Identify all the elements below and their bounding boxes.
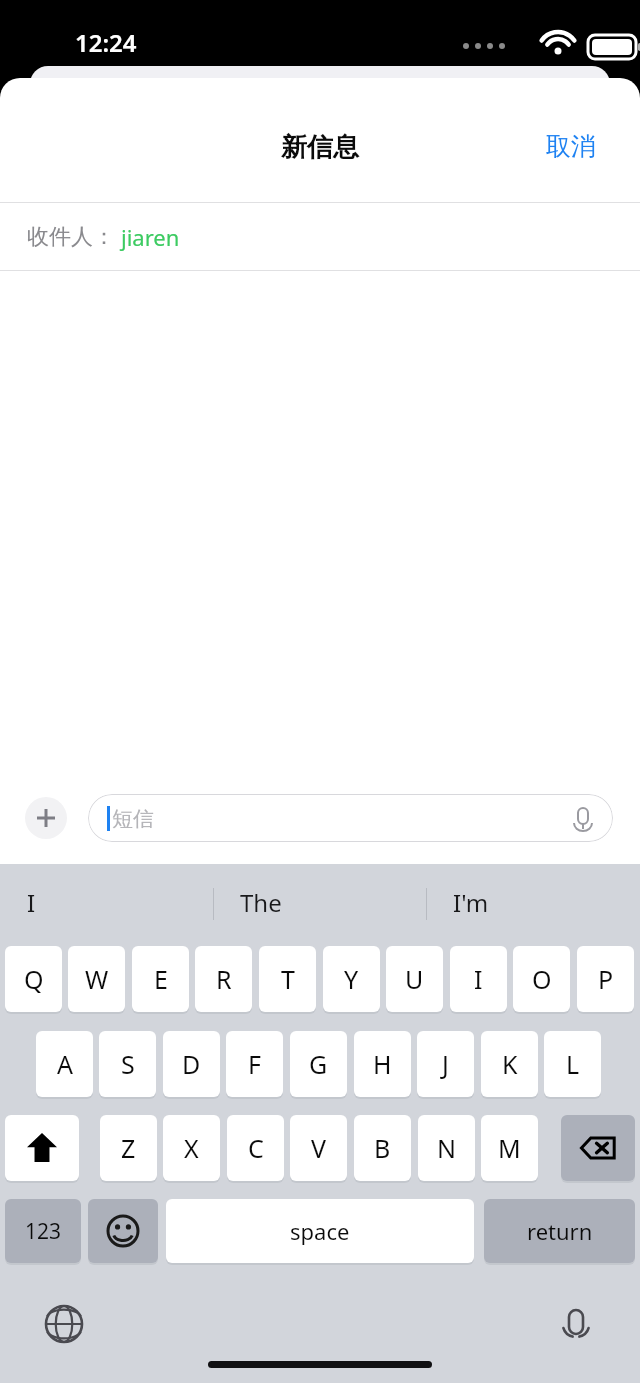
- button[interactable]: return: [484, 1199, 635, 1263]
- button[interactable]: B: [354, 1115, 411, 1181]
- button[interactable]: T: [259, 946, 316, 1012]
- button[interactable]: space: [166, 1199, 474, 1263]
- button[interactable]: 取消: [540, 126, 602, 167]
- staticText: return: [527, 1216, 593, 1246]
- button[interactable]: C: [227, 1115, 284, 1181]
- button[interactable]: P: [577, 946, 634, 1012]
- button[interactable]: F: [226, 1031, 283, 1097]
- button[interactable]: J: [417, 1031, 474, 1097]
- button[interactable]: Add attachment: [25, 797, 67, 839]
- button[interactable]: I: [450, 946, 507, 1012]
- button[interactable]: V: [290, 1115, 347, 1181]
- staticText: K: [502, 1047, 518, 1081]
- button[interactable]: M: [481, 1115, 538, 1181]
- button[interactable]: 收件人：: [0, 203, 640, 270]
- button[interactable]: Change keyboard: [40, 1300, 88, 1348]
- staticText: E: [154, 962, 168, 996]
- button[interactable]: N: [418, 1115, 475, 1181]
- staticText: The: [240, 886, 400, 919]
- staticText: T: [281, 962, 295, 996]
- staticText: P: [598, 962, 614, 996]
- staticText: S: [121, 1047, 135, 1081]
- staticText: I'm: [453, 886, 613, 919]
- staticText: X: [184, 1131, 199, 1165]
- staticText: F: [248, 1047, 261, 1081]
- staticText: 短信: [112, 806, 154, 832]
- staticText: B: [374, 1131, 391, 1165]
- button[interactable]: L: [544, 1031, 601, 1097]
- staticText: G: [309, 1047, 328, 1081]
- button[interactable]: O: [513, 946, 570, 1012]
- button[interactable]: S: [99, 1031, 156, 1097]
- staticText: V: [311, 1131, 327, 1165]
- staticText: N: [437, 1131, 457, 1165]
- button[interactable]: I: [27, 872, 187, 932]
- button[interactable]: Y: [323, 946, 380, 1012]
- staticText: R: [216, 962, 232, 996]
- button[interactable]: Emoji: [88, 1199, 158, 1263]
- button[interactable]: R: [195, 946, 252, 1012]
- staticText: I: [474, 962, 483, 996]
- staticText: space: [290, 1216, 350, 1246]
- button[interactable]: A: [36, 1031, 93, 1097]
- button[interactable]: Voice message: [568, 803, 598, 833]
- staticText: H: [373, 1047, 392, 1081]
- staticText: 12:24: [75, 26, 137, 59]
- button[interactable]: H: [354, 1031, 411, 1097]
- staticText: D: [182, 1047, 201, 1081]
- staticText: I: [27, 886, 187, 919]
- staticText: Q: [24, 962, 44, 996]
- staticText: M: [498, 1131, 521, 1165]
- button[interactable]: 短信: [88, 794, 613, 842]
- button[interactable]: Dictation: [552, 1300, 600, 1348]
- staticText: O: [532, 962, 552, 996]
- button[interactable]: Z: [100, 1115, 157, 1181]
- staticText: 新信息: [281, 131, 359, 164]
- button[interactable]: 123: [5, 1199, 81, 1263]
- button[interactable]: W: [68, 946, 125, 1012]
- button[interactable]: Q: [5, 946, 62, 1012]
- staticText: Y: [344, 962, 359, 996]
- staticText: U: [405, 962, 424, 996]
- button[interactable]: X: [163, 1115, 220, 1181]
- staticText: 123: [25, 1217, 62, 1246]
- staticText: jiaren: [121, 222, 180, 252]
- staticText: 收件人：: [27, 223, 115, 251]
- button[interactable]: Delete: [561, 1115, 635, 1181]
- staticText: Z: [121, 1131, 136, 1165]
- staticText: A: [57, 1047, 73, 1081]
- staticText: W: [85, 962, 109, 996]
- staticText: J: [442, 1047, 449, 1081]
- button[interactable]: U: [386, 946, 443, 1012]
- button[interactable]: K: [481, 1031, 538, 1097]
- staticText: L: [566, 1047, 580, 1081]
- staticText: C: [248, 1131, 264, 1165]
- staticText: 取消: [546, 131, 596, 162]
- button[interactable]: I'm: [453, 872, 613, 932]
- button[interactable]: E: [132, 946, 189, 1012]
- button[interactable]: D: [163, 1031, 220, 1097]
- button[interactable]: G: [290, 1031, 347, 1097]
- button[interactable]: The: [240, 872, 400, 932]
- button[interactable]: Shift: [5, 1115, 79, 1181]
